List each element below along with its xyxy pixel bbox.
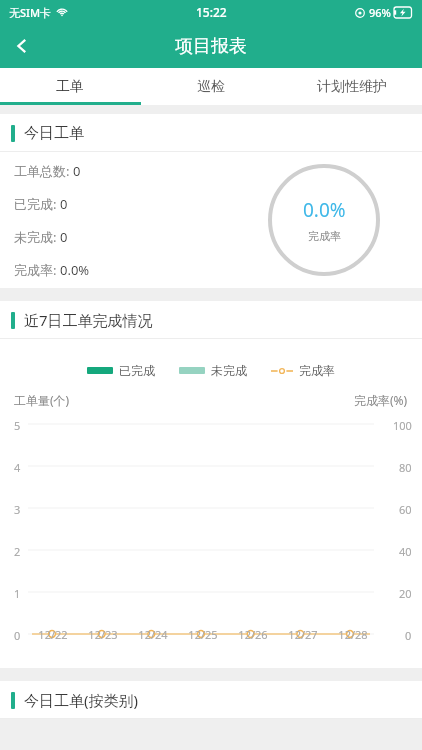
staticText: 15:22: [196, 4, 227, 20]
button[interactable]: 巡检: [140, 68, 281, 105]
staticText: 完成率(%): [354, 392, 408, 408]
staticText: 96%: [369, 5, 391, 20]
staticText: 0: [73, 162, 81, 180]
staticText: 3: [14, 502, 21, 517]
staticText: 项目报表: [175, 35, 247, 58]
button[interactable]: Back: [0, 24, 44, 68]
staticText: 0: [60, 228, 68, 246]
staticText: 60: [399, 502, 412, 517]
staticText: 1: [14, 586, 21, 601]
staticText: 40: [399, 544, 412, 559]
staticText: 完成率: [308, 229, 341, 243]
staticText: 今日工单(按类别): [24, 690, 139, 710]
staticText: 无SIM卡: [9, 5, 52, 20]
staticText: 100: [393, 418, 412, 433]
staticText: 近7日工单完成情况: [24, 310, 153, 330]
staticText: 12/22: [38, 627, 68, 642]
staticText: 工单总数:: [14, 162, 73, 180]
staticText: 巡检: [197, 78, 225, 96]
staticText: 5: [14, 418, 21, 433]
staticText: 2: [14, 544, 21, 559]
staticText: 0.0%: [60, 261, 90, 279]
staticText: 工单: [56, 78, 84, 96]
staticText: 0: [14, 628, 21, 643]
staticText: 工单量(个): [14, 392, 70, 408]
staticText: 完成率: [299, 363, 335, 378]
staticText: 12/25: [188, 627, 218, 642]
staticText: 0: [405, 628, 412, 643]
staticText: 未完成:: [14, 228, 60, 246]
staticText: 完成率:: [14, 261, 60, 279]
staticText: 12/28: [338, 627, 368, 642]
staticText: 12/26: [238, 627, 268, 642]
staticText: 4: [14, 460, 21, 475]
staticText: 计划性维护: [317, 78, 387, 96]
button[interactable]: 计划性维护: [281, 68, 422, 105]
staticText: 已完成:: [14, 195, 60, 213]
staticText: 20: [399, 586, 412, 601]
staticText: 12/23: [88, 627, 118, 642]
staticText: 未完成: [211, 363, 247, 378]
staticText: 80: [399, 460, 412, 475]
staticText: 0: [60, 195, 68, 213]
staticText: 今日工单: [24, 124, 84, 143]
staticText: 12/27: [288, 627, 318, 642]
staticText: 已完成: [119, 363, 155, 378]
staticText: 0.0%: [303, 197, 346, 223]
staticText: 12/24: [138, 627, 168, 642]
button[interactable]: 工单: [0, 68, 140, 105]
